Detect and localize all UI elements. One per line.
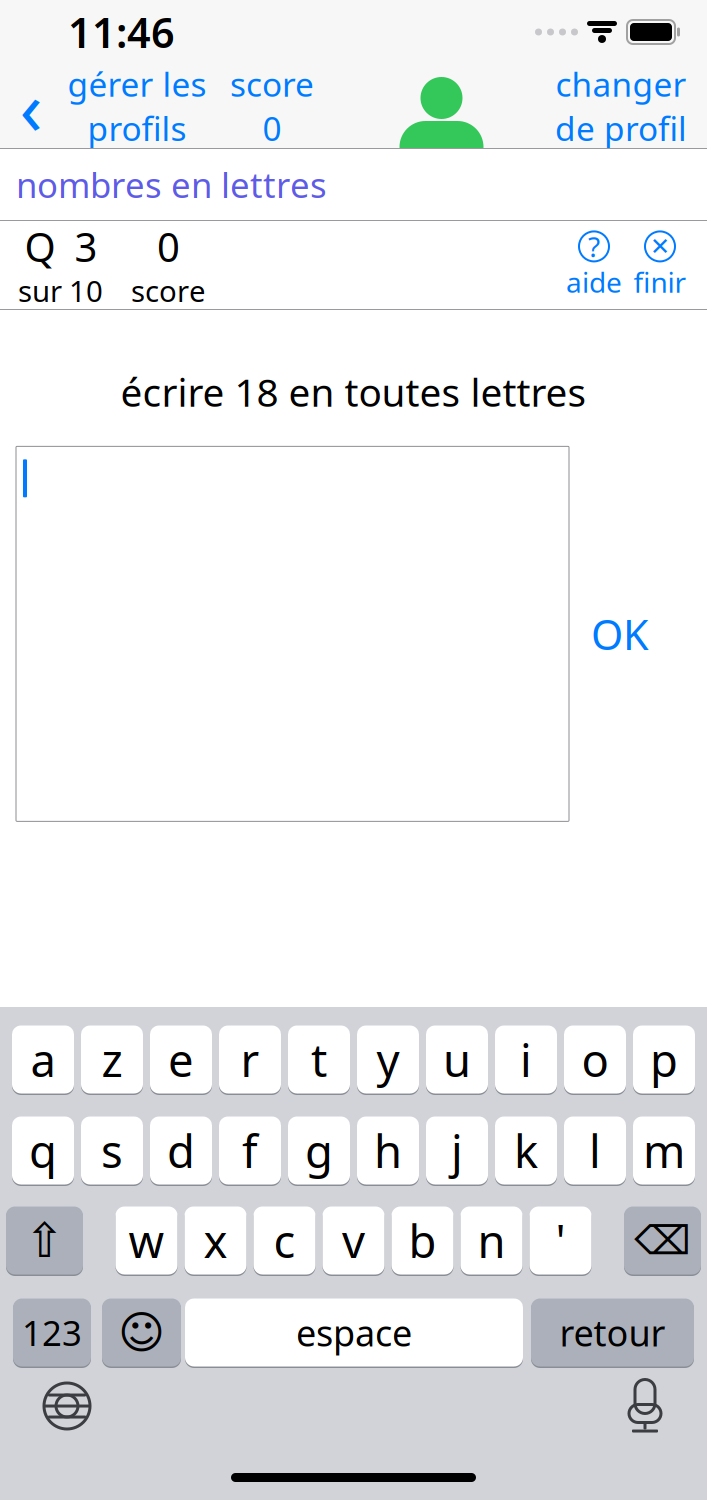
button[interactable]: m bbox=[633, 1115, 695, 1186]
button[interactable]: e bbox=[150, 1024, 212, 1095]
staticText: score bbox=[131, 271, 206, 310]
staticText: j bbox=[451, 1120, 463, 1181]
staticText: écrire 18 en toutes lettres bbox=[120, 366, 586, 417]
button[interactable]: Émoji bbox=[102, 1297, 181, 1368]
button[interactable]: y bbox=[357, 1024, 419, 1095]
staticText: de profil bbox=[555, 106, 687, 150]
button[interactable]: score bbox=[212, 71, 332, 141]
staticText: ' bbox=[555, 1210, 565, 1271]
staticText: 11:46 bbox=[68, 5, 175, 59]
button[interactable]: v bbox=[322, 1205, 384, 1276]
button[interactable]: p bbox=[633, 1024, 695, 1095]
staticText: ⌫ bbox=[634, 1218, 691, 1263]
button[interactable]: retour bbox=[531, 1297, 694, 1368]
staticText: espace bbox=[296, 1309, 412, 1356]
button[interactable]: 123 bbox=[13, 1297, 91, 1368]
button[interactable]: t bbox=[288, 1024, 350, 1095]
button[interactable]: h bbox=[357, 1115, 419, 1186]
staticText: score bbox=[230, 62, 314, 106]
staticText: t bbox=[311, 1029, 327, 1090]
button[interactable]: i bbox=[495, 1024, 557, 1095]
button[interactable]: s bbox=[81, 1115, 143, 1186]
button[interactable]: espace bbox=[185, 1297, 523, 1368]
staticText: o bbox=[581, 1029, 608, 1090]
staticText: g bbox=[305, 1120, 333, 1181]
staticText: d bbox=[167, 1120, 195, 1181]
button[interactable]: Majuscule bbox=[6, 1205, 83, 1276]
staticText: 123 bbox=[22, 1309, 82, 1355]
staticText: Q bbox=[24, 220, 55, 273]
button[interactable]: r bbox=[219, 1024, 281, 1095]
staticText: 10 bbox=[69, 271, 103, 310]
staticText: ‹ bbox=[19, 56, 42, 156]
button[interactable]: Supprimer bbox=[624, 1205, 701, 1276]
button[interactable]: Retour bbox=[0, 71, 62, 141]
staticText: s bbox=[101, 1120, 123, 1181]
staticText: i bbox=[520, 1029, 532, 1090]
button[interactable]: k bbox=[495, 1115, 557, 1186]
staticText: retour bbox=[559, 1309, 665, 1356]
staticText: w bbox=[128, 1210, 164, 1271]
button[interactable]: ' bbox=[529, 1205, 591, 1276]
button[interactable]: gérer les bbox=[62, 71, 212, 141]
button[interactable]: ✕ bbox=[627, 225, 693, 305]
staticText: 3 bbox=[74, 220, 97, 273]
staticText: l bbox=[589, 1120, 601, 1181]
staticText: z bbox=[101, 1029, 122, 1090]
staticText: f bbox=[242, 1120, 258, 1181]
button[interactable]: Changer de clavier bbox=[0, 1375, 110, 1437]
staticText: p bbox=[650, 1029, 678, 1090]
button[interactable]: d bbox=[150, 1115, 212, 1186]
staticText: u bbox=[443, 1029, 471, 1090]
button[interactable]: w bbox=[115, 1205, 177, 1276]
button[interactable]: q bbox=[12, 1115, 74, 1186]
staticText: ☺ bbox=[118, 1307, 165, 1358]
staticText: q bbox=[29, 1120, 57, 1181]
staticText: ⇧ bbox=[24, 1213, 64, 1268]
staticText: h bbox=[374, 1120, 402, 1181]
button[interactable]: n bbox=[460, 1205, 522, 1276]
staticText: c bbox=[273, 1210, 295, 1271]
staticText: aide bbox=[566, 263, 622, 301]
button[interactable]: a bbox=[12, 1024, 74, 1095]
button[interactable]: j bbox=[426, 1115, 488, 1186]
staticText: k bbox=[514, 1120, 538, 1181]
button[interactable]: o bbox=[564, 1024, 626, 1095]
staticText: ? bbox=[588, 228, 600, 265]
staticText: changer bbox=[555, 62, 686, 106]
button[interactable]: l bbox=[564, 1115, 626, 1186]
staticText: 0 bbox=[262, 106, 281, 150]
button[interactable]: c bbox=[253, 1205, 315, 1276]
button[interactable]: OK bbox=[577, 596, 663, 671]
staticText: ✕ bbox=[650, 233, 670, 260]
staticText: e bbox=[168, 1029, 194, 1090]
button[interactable]: Profil bbox=[396, 52, 486, 160]
button[interactable]: Dictée bbox=[607, 1376, 707, 1436]
staticText: y bbox=[376, 1029, 399, 1090]
staticText: r bbox=[240, 1029, 259, 1090]
staticText: 0 bbox=[157, 220, 180, 273]
staticText: v bbox=[342, 1210, 365, 1271]
staticText: finir bbox=[633, 263, 686, 301]
button[interactable]: x bbox=[184, 1205, 246, 1276]
staticText: n bbox=[477, 1210, 505, 1271]
staticText: m bbox=[643, 1120, 685, 1181]
button[interactable]: b bbox=[391, 1205, 453, 1276]
staticText: profils bbox=[87, 106, 186, 150]
button[interactable]: z bbox=[81, 1024, 143, 1095]
staticText: a bbox=[30, 1029, 55, 1090]
staticText: gérer les bbox=[67, 62, 206, 106]
button[interactable]: ? bbox=[561, 225, 627, 305]
button[interactable]: f bbox=[219, 1115, 281, 1186]
staticText: x bbox=[203, 1210, 227, 1271]
button[interactable]: changer bbox=[551, 71, 707, 141]
staticText: b bbox=[408, 1210, 436, 1271]
button[interactable]: u bbox=[426, 1024, 488, 1095]
button[interactable]: g bbox=[288, 1115, 350, 1186]
staticText: sur bbox=[18, 271, 62, 310]
staticText: nombres en lettres bbox=[16, 161, 327, 207]
staticText: OK bbox=[591, 606, 649, 661]
